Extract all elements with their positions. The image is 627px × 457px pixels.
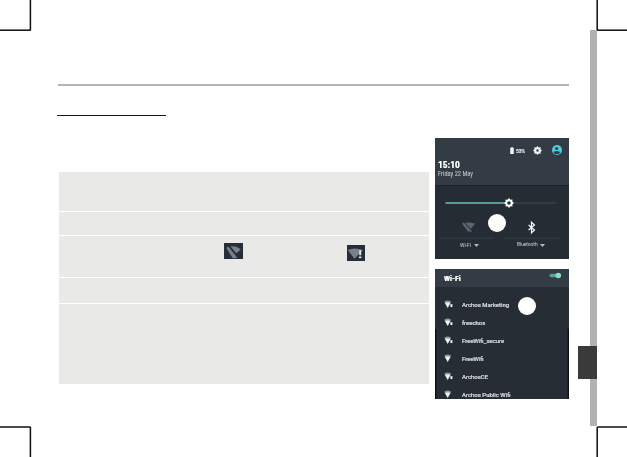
button[interactable]: Wi-Fi: [460, 242, 479, 248]
button[interactable]: [59, 236, 429, 277]
button[interactable]: Wi-Fi off: [462, 222, 475, 232]
button[interactable]: User profile: [552, 145, 562, 155]
staticText: 15:10: [438, 159, 460, 170]
button[interactable]: Auto rotate: [488, 214, 506, 232]
staticText: Friday 22 May: [438, 170, 473, 178]
staticText: Wi-Fi: [444, 274, 461, 283]
button[interactable]: freechos: [435, 313, 569, 331]
staticText: Wi-Fi: [460, 242, 472, 248]
button[interactable]: Settings: [533, 146, 542, 155]
button[interactable]: ArchosCE: [435, 367, 569, 385]
button[interactable]: FreeWifi: [435, 349, 569, 367]
staticText: FreeWifi: [462, 355, 484, 362]
button[interactable]: Archos Public Wifi: [435, 385, 569, 403]
staticText: 53%: [516, 148, 526, 154]
staticText: Archos Public Wifi: [462, 391, 511, 398]
staticText: FreeWifi_secure: [462, 337, 505, 344]
staticText: freechos: [462, 319, 486, 326]
button[interactable]: Archos Marketing: [435, 295, 569, 313]
button[interactable]: Wi-Fi: [435, 269, 569, 287]
staticText: Bluetooth: [517, 242, 538, 248]
button[interactable]: Bluetooth: [517, 242, 545, 248]
button[interactable]: Bluetooth: [528, 222, 535, 233]
staticText: ArchosCE: [462, 373, 489, 380]
button[interactable]: FreeWifi_secure: [435, 331, 569, 349]
staticText: Archos Marketing: [462, 301, 510, 308]
